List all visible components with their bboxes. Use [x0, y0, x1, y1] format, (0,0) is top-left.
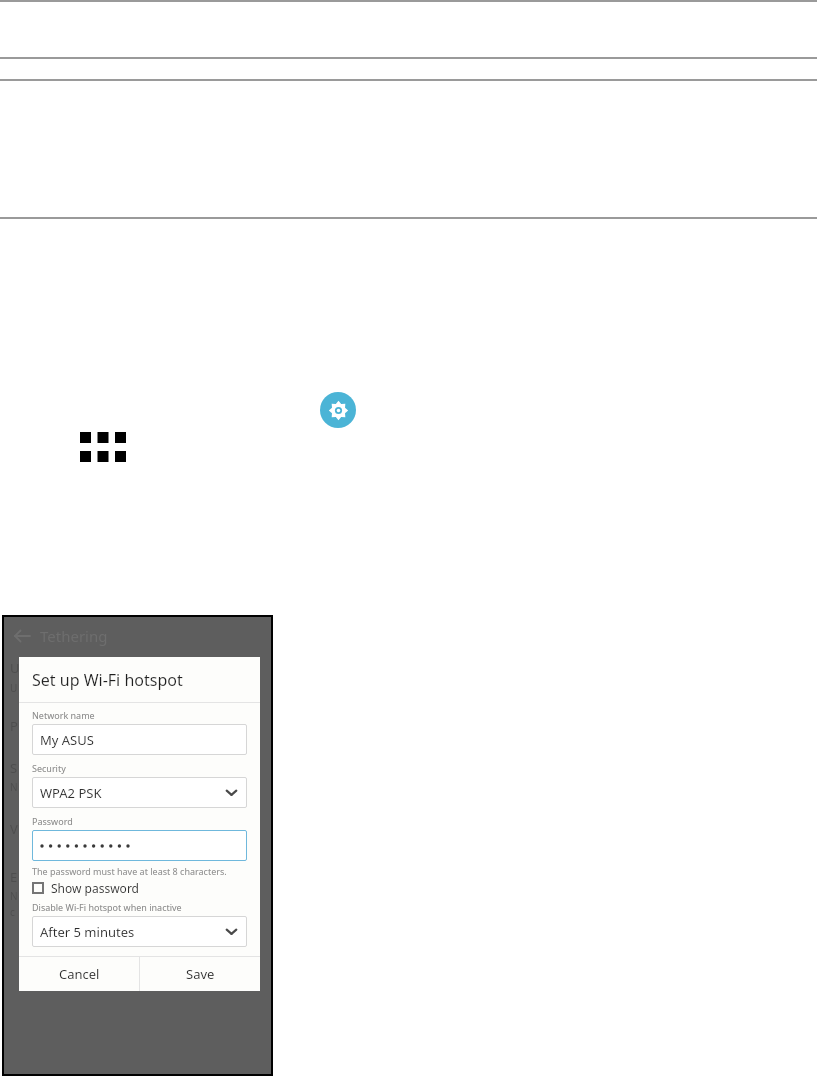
staticText: Security: [32, 762, 66, 774]
button[interactable]: Save: [140, 957, 260, 991]
staticText: E: [10, 868, 18, 886]
staticText: N: [10, 780, 18, 794]
staticText: My ASUS: [40, 731, 239, 749]
staticText: After 5 minutes: [40, 923, 224, 941]
staticText: c: [10, 905, 15, 919]
staticText: Save: [186, 965, 215, 983]
staticText: Tethering: [40, 626, 108, 646]
button[interactable]: After 5 minutes: [32, 916, 247, 947]
staticText: Cancel: [59, 965, 100, 983]
staticText: V: [10, 820, 18, 838]
staticText: WPA2 PSK: [40, 784, 224, 802]
button[interactable]: All apps: [80, 432, 126, 462]
button[interactable]: WPA2 PSK: [32, 777, 247, 808]
staticText: The password must have at least 8 charac…: [32, 865, 227, 877]
button[interactable]: Settings: [320, 392, 356, 428]
staticText: U: [10, 659, 20, 677]
button[interactable]: [32, 830, 247, 861]
staticText: N: [10, 889, 18, 903]
staticText: S: [10, 759, 18, 777]
staticText: Show password: [51, 880, 139, 896]
staticText: Set up Wi-Fi hotspot: [32, 669, 183, 691]
staticText: Disable Wi-Fi hotspot when inactive: [32, 901, 182, 913]
button[interactable]: Show password: [32, 880, 247, 896]
staticText: Password: [32, 815, 73, 827]
staticText: U: [10, 681, 18, 695]
button[interactable]: Cancel: [19, 957, 139, 991]
button[interactable]: Back: [14, 628, 30, 644]
staticText: P: [10, 717, 18, 735]
staticText: Network name: [32, 709, 95, 721]
button[interactable]: My ASUS: [32, 724, 247, 755]
